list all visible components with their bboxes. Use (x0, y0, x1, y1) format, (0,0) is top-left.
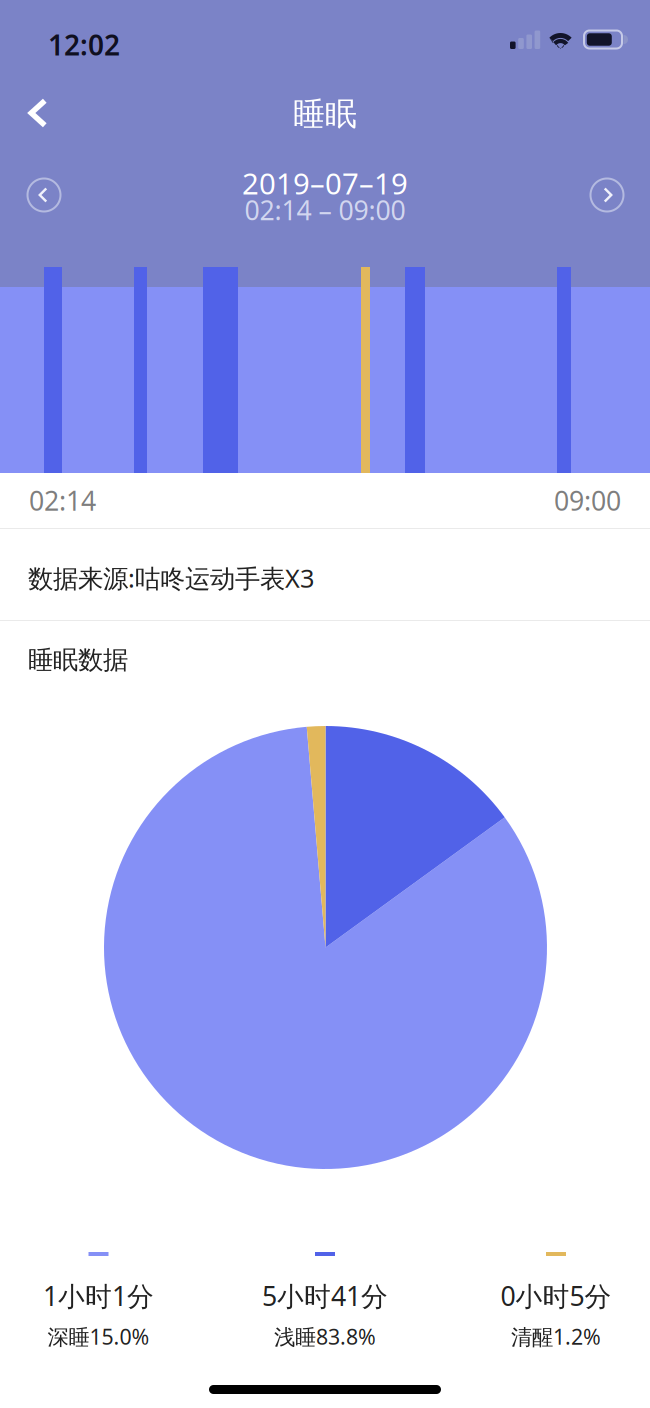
staticText: 睡眠数据 (28, 644, 128, 675)
staticText: 2019–07–19 (242, 163, 408, 202)
staticText: 0小时5分 (500, 1278, 611, 1313)
staticText: 深睡15.0% (47, 1322, 149, 1351)
staticText: 12:02 (48, 26, 120, 63)
staticText: 5小时41分 (262, 1278, 388, 1313)
staticText: 睡眠 (293, 94, 357, 134)
staticText: 02:14 – 09:00 (244, 192, 405, 228)
staticText: 清醒1.2% (511, 1322, 601, 1351)
staticText: 浅睡83.8% (274, 1322, 376, 1351)
staticText: 数据来源:咕咚运动手表X3 (28, 561, 314, 595)
button[interactable]: Back (6, 82, 70, 144)
staticText: 1小时1分 (43, 1278, 154, 1313)
staticText: 02:14 (29, 483, 96, 518)
button[interactable]: Previous day (18, 169, 70, 221)
staticText: 09:00 (554, 483, 621, 518)
button[interactable]: Next day (581, 169, 633, 221)
